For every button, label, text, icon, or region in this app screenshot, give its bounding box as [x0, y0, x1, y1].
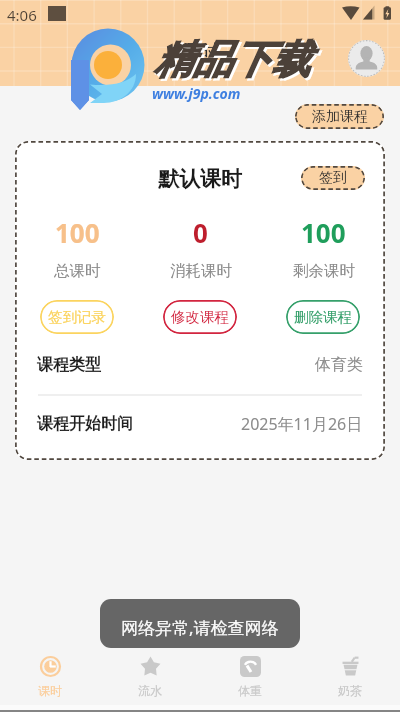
button[interactable]: 课程开始时间 [15, 400, 385, 448]
button[interactable]: 奶茶 [300, 650, 400, 705]
button[interactable]: 体重 [200, 650, 300, 705]
staticText: 2025年11月26日 [241, 413, 363, 435]
staticText: 100 [55, 215, 100, 250]
button[interactable]: Profile [348, 40, 385, 77]
staticText: 流水 [138, 683, 162, 698]
staticText: 奶茶 [338, 683, 362, 698]
staticText: 体育类 [315, 355, 363, 375]
staticText: 删除课程 [294, 308, 352, 326]
staticText: 消耗课时 [170, 261, 232, 281]
staticText: 添加课程 [312, 108, 368, 125]
staticText: 修改课程 [171, 308, 229, 326]
button[interactable]: 课程类型 [15, 341, 385, 389]
staticText: 课时 [38, 683, 62, 698]
button[interactable]: 删除课程 [286, 300, 360, 334]
button[interactable]: 签到记录 [40, 300, 114, 334]
staticText: 签到 [319, 169, 347, 187]
staticText: 体重 [238, 683, 262, 698]
button[interactable]: 流水 [100, 650, 200, 705]
staticText: 4:06 [7, 5, 37, 25]
staticText: 默认课时 [158, 166, 242, 192]
button[interactable]: 添加课程 [295, 104, 384, 129]
button[interactable]: 签到 [301, 166, 365, 190]
staticText: 100 [301, 215, 346, 250]
staticText: 课时 [181, 40, 219, 64]
staticText: 网络异常,请检查网络 [121, 616, 279, 639]
staticText: 签到记录 [48, 308, 106, 326]
button[interactable]: 修改课程 [163, 300, 237, 334]
staticText: 精品下载 [156, 37, 312, 86]
staticText: 0 [193, 215, 208, 250]
staticText: 总课时 [54, 261, 101, 281]
staticText: 课程开始时间 [37, 414, 133, 434]
staticText: 精品下载 [154, 35, 310, 84]
staticText: 课程类型 [37, 355, 101, 375]
button[interactable]: 课时 [0, 650, 100, 705]
staticText: 剩余课时 [293, 261, 355, 281]
staticText: www.j9p.com [152, 84, 241, 103]
